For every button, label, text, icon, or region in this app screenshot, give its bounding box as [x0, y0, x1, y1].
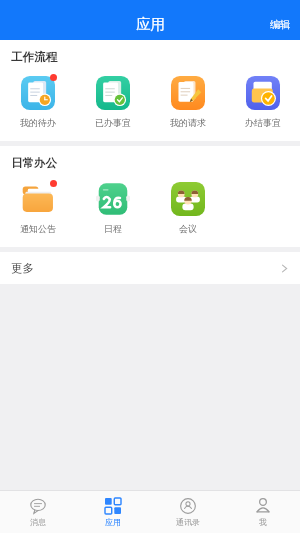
button[interactable]: 通知公告 [0, 174, 75, 239]
button[interactable]: 通讯录 [150, 491, 225, 533]
staticText: 应用 [136, 15, 165, 33]
staticText: 日常办公 [11, 156, 57, 170]
button[interactable]: 我的请求 [150, 68, 225, 133]
button[interactable]: 消息 [0, 491, 75, 533]
button[interactable]: 我 [225, 491, 300, 533]
button[interactable]: 办结事宜 [225, 68, 300, 133]
staticText: 办结事宜 [245, 117, 281, 128]
button[interactable]: 已办事宜 [75, 68, 150, 133]
button[interactable]: 应用 [75, 491, 150, 533]
button[interactable]: 我的待办 [0, 68, 75, 133]
staticText: 我 [259, 517, 267, 527]
staticText: 会议 [179, 223, 197, 234]
staticText: 更多 [11, 261, 34, 275]
other: More [280, 264, 289, 273]
staticText: 工作流程 [11, 50, 57, 64]
staticText: 已办事宜 [95, 117, 131, 128]
button[interactable]: 更多 [0, 252, 300, 284]
staticText: 通知公告 [20, 223, 56, 234]
staticText: 我的请求 [170, 117, 206, 128]
button[interactable]: 日程 [75, 174, 150, 239]
staticText: 编辑 [270, 18, 290, 31]
staticText: 我的待办 [20, 117, 56, 128]
staticText: 应用 [105, 517, 121, 527]
staticText: 日程 [104, 223, 122, 234]
button[interactable]: 会议 [150, 174, 225, 239]
button[interactable]: 编辑 [260, 12, 300, 37]
staticText: 通讯录 [176, 517, 200, 527]
staticText: 消息 [30, 517, 46, 527]
